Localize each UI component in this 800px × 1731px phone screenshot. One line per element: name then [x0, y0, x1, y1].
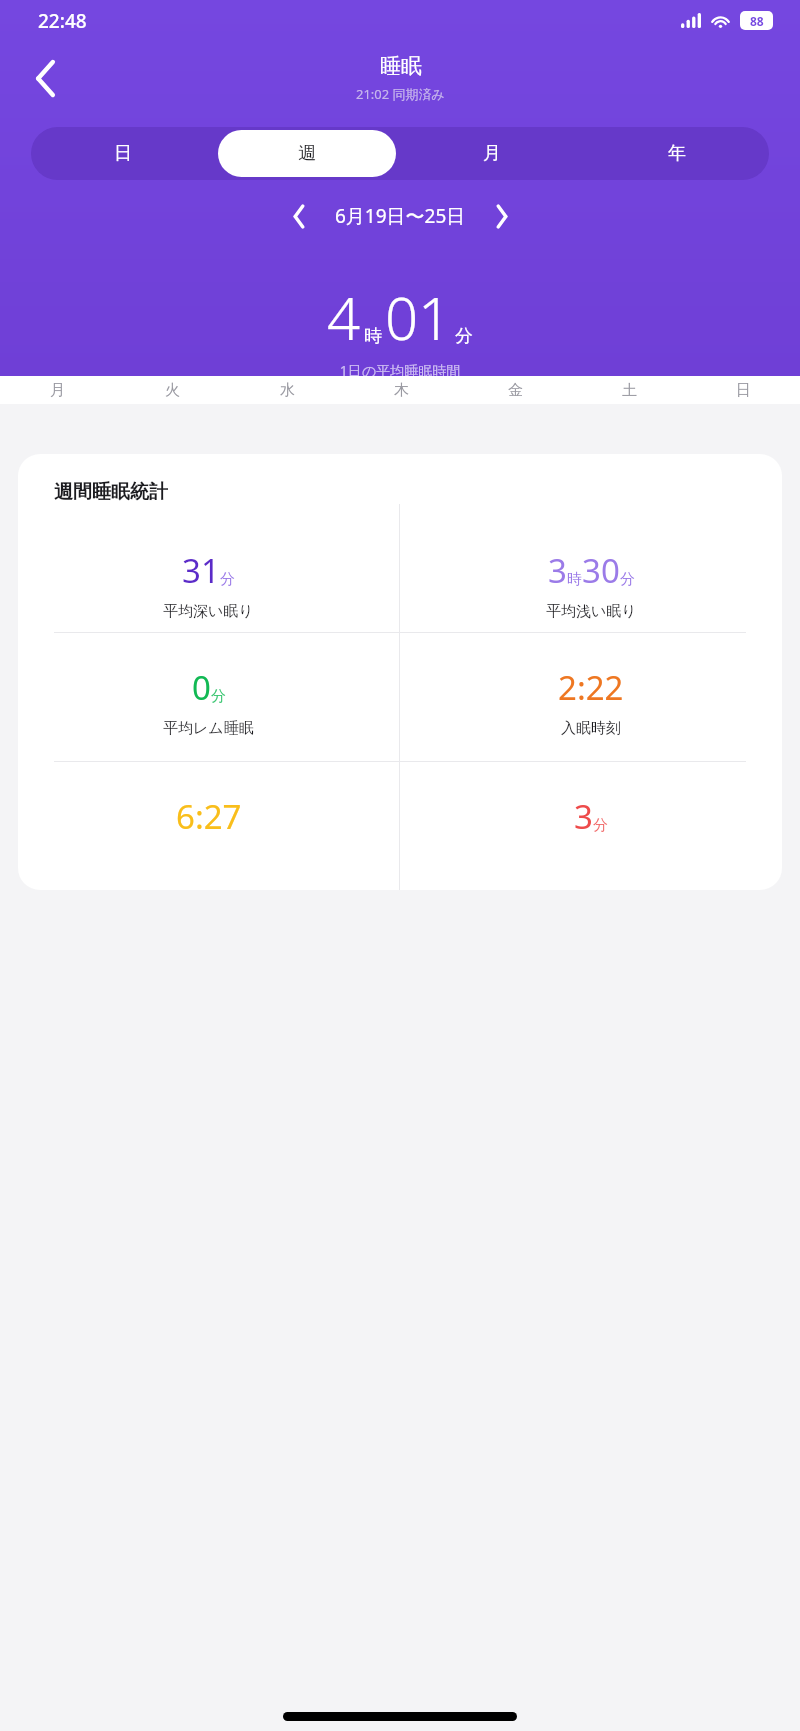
staticText: 6:27 [176, 794, 242, 839]
staticText: 分 [620, 570, 635, 589]
staticText: 4 [327, 278, 361, 357]
button[interactable]: 日 [31, 127, 215, 180]
staticText: 平均レム睡眠 [163, 719, 254, 738]
button[interactable]: 週 [218, 130, 396, 177]
staticText: 3 [548, 548, 567, 593]
staticText: 週 [298, 142, 316, 165]
staticText: 22:48 [38, 8, 87, 34]
staticText: 平均浅い眠り [546, 602, 637, 621]
staticText: 日 [736, 381, 751, 400]
staticText: 年 [668, 142, 686, 165]
button[interactable]: 前の週 [277, 194, 321, 238]
staticText: 火 [165, 381, 180, 400]
staticText: 6月19日〜25日 [335, 203, 466, 229]
staticText: 日 [114, 142, 132, 165]
staticText: 2:22 [558, 665, 624, 710]
staticText: 週間睡眠統計 [54, 480, 168, 504]
staticText: 時 [364, 325, 382, 348]
staticText: 金 [508, 381, 523, 400]
staticText: 分 [220, 570, 235, 589]
staticText: 水 [280, 381, 295, 400]
staticText: 木 [394, 381, 409, 400]
button[interactable]: 月 [399, 127, 584, 180]
staticText: 月 [50, 381, 65, 400]
staticText: 3 [574, 794, 593, 839]
staticText: 分 [211, 687, 226, 706]
staticText: 土 [622, 381, 637, 400]
button[interactable]: 戻る [16, 49, 74, 107]
staticText: 睡眠 [380, 53, 422, 79]
staticText: 時 [567, 570, 582, 589]
staticText: 1日の平均睡眠時間 [0, 361, 800, 376]
staticText: 入眠時刻 [561, 719, 621, 738]
staticText: 月 [483, 142, 501, 165]
staticText: 31 [182, 548, 220, 593]
staticText: 平均深い眠り [163, 602, 254, 621]
staticText: 01 [385, 278, 452, 357]
staticText: 分 [455, 325, 473, 348]
staticText: 30 [582, 548, 620, 593]
staticText: 0 [192, 665, 211, 710]
button[interactable]: 年 [584, 127, 769, 180]
staticText: 分 [593, 816, 608, 835]
button[interactable]: 次の週 [480, 194, 524, 238]
staticText: 21:02 同期済み [356, 85, 445, 103]
staticText: 88 [750, 13, 764, 29]
